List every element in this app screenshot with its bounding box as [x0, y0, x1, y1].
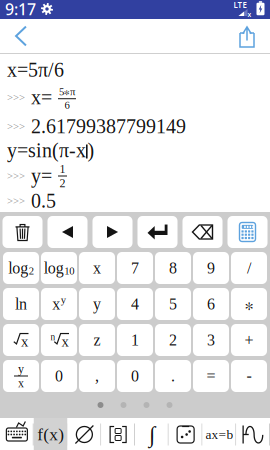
staticText: z [93, 331, 100, 349]
staticText: >>> [7, 121, 25, 132]
staticText: 1 [131, 331, 139, 349]
button[interactable]: 6 [193, 288, 229, 320]
button[interactable]: Probability [169, 418, 203, 450]
staticText: 2.61799387799149 [31, 115, 186, 137]
staticText: ) [88, 139, 95, 161]
staticText: >>> [7, 92, 25, 103]
button[interactable]: xy [41, 288, 77, 320]
staticText: 9 [207, 259, 215, 277]
button[interactable]: Integral [135, 418, 169, 450]
button[interactable]: 2 [155, 324, 191, 356]
staticText: x= [31, 86, 52, 108]
button[interactable]: 8 [155, 252, 191, 284]
staticText: x [52, 295, 60, 313]
button[interactable]: + [231, 324, 267, 356]
staticText: ln [15, 295, 27, 313]
staticText: 2 [29, 265, 34, 277]
button[interactable]: Backspace [182, 216, 222, 248]
button[interactable]: ∗ [231, 288, 267, 320]
button[interactable]: Graph [236, 418, 270, 450]
button[interactable]: Matrix [101, 418, 135, 450]
staticText: 0.5 [31, 190, 56, 212]
staticText: 0 [55, 367, 63, 385]
button[interactable]: log2 [3, 252, 39, 284]
staticText: 9:17 [5, 0, 36, 20]
staticText: x [93, 259, 101, 277]
staticText: 8 [169, 259, 177, 277]
staticText: x [21, 333, 28, 350]
button[interactable]: 0 [117, 360, 153, 392]
staticText: ∗ [245, 293, 253, 315]
staticText: x [61, 333, 68, 350]
staticText: y [93, 295, 101, 313]
button[interactable]: 3 [193, 324, 229, 356]
button[interactable]: 5 [155, 288, 191, 320]
button[interactable]: y [79, 288, 115, 320]
button[interactable]: Keyboard [0, 418, 34, 450]
staticText: 5 [169, 295, 177, 313]
staticText: / [247, 259, 251, 277]
staticText: y=sin(π-x [7, 139, 86, 161]
button[interactable]: Delete all [2, 216, 42, 248]
staticText: n [50, 332, 55, 342]
button[interactable]: 9 [193, 252, 229, 284]
button[interactable]: Return [137, 216, 177, 248]
staticText: . [171, 367, 175, 385]
staticText: 2 [169, 331, 177, 349]
staticText: f(x) [37, 425, 64, 444]
button[interactable]: = [193, 360, 229, 392]
staticText: y [61, 294, 66, 306]
button[interactable]: Back [4, 19, 38, 53]
button[interactable]: , [79, 360, 115, 392]
staticText: 10 [64, 265, 74, 277]
staticText: 7 [131, 259, 139, 277]
button[interactable]: z [79, 324, 115, 356]
staticText: y [18, 362, 24, 375]
staticText: 1 [59, 162, 65, 175]
staticText: 5∗π [59, 84, 75, 98]
button[interactable]: Empty set [67, 418, 101, 450]
staticText: 2 [59, 176, 65, 190]
staticText: + [244, 331, 253, 349]
button[interactable]: ln [3, 288, 39, 320]
staticText: log [8, 259, 28, 277]
button[interactable]: Left [47, 216, 87, 248]
staticText: >>> [7, 170, 25, 182]
button[interactable]: - [231, 360, 267, 392]
staticText: - [246, 367, 251, 385]
staticText: >>> [7, 195, 25, 207]
staticText: = [206, 367, 215, 385]
button[interactable]: nth root of x [41, 324, 77, 356]
staticText: 3 [207, 331, 215, 349]
button[interactable]: square root of x [3, 324, 39, 356]
button[interactable]: x [79, 252, 115, 284]
staticText: x [247, 10, 251, 19]
button[interactable]: 7 [117, 252, 153, 284]
button[interactable]: y over x [3, 360, 39, 392]
button[interactable]: 4 [117, 288, 153, 320]
staticText: ax=b [205, 427, 233, 442]
button[interactable]: Share [230, 19, 264, 53]
button[interactable]: Calculator [227, 216, 267, 248]
staticText: x=5π/6 [7, 59, 64, 81]
button[interactable]: / [231, 252, 267, 284]
staticText: , [95, 367, 99, 385]
staticText: 6 [64, 99, 69, 111]
button[interactable]: 0 [41, 360, 77, 392]
staticText: 0 [131, 367, 139, 385]
button[interactable]: 1 [117, 324, 153, 356]
staticText: ∫ [149, 422, 155, 447]
staticText: 4 [131, 295, 139, 313]
button[interactable]: Right [92, 216, 132, 248]
staticText: x [18, 376, 24, 390]
staticText: LTE [233, 0, 246, 10]
button[interactable]: log10 [41, 252, 77, 284]
staticText: y= [31, 165, 52, 187]
button[interactable]: Equations [202, 418, 236, 450]
button[interactable]: Functions [34, 418, 68, 450]
button[interactable]: . [155, 360, 191, 392]
staticText: 6 [207, 295, 215, 313]
staticText: log [44, 259, 64, 277]
